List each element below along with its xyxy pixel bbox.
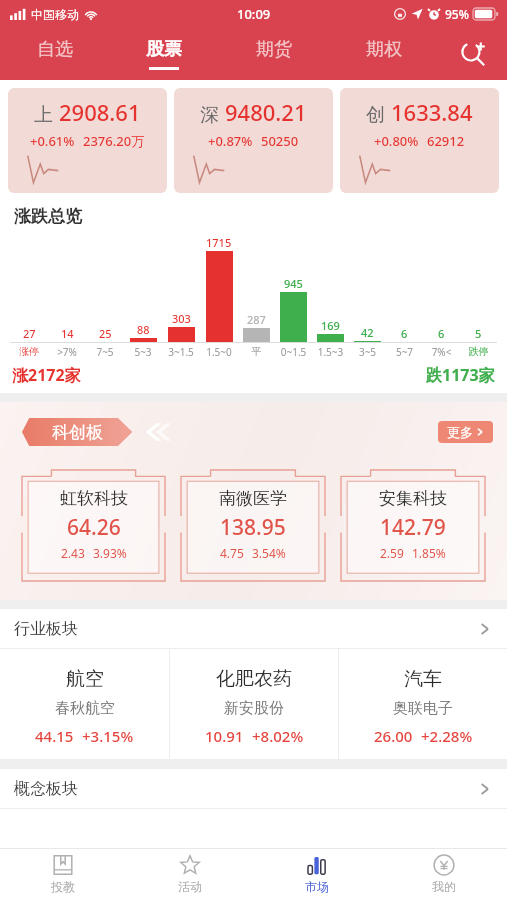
- staticText: 88: [137, 322, 150, 337]
- staticText: 市场: [305, 879, 329, 894]
- staticText: 14: [61, 326, 74, 341]
- staticText: 1633.84: [391, 97, 473, 127]
- staticText: 南微医学: [219, 488, 287, 509]
- staticText: 945: [284, 276, 303, 291]
- button[interactable]: 投教: [0, 848, 126, 900]
- staticText: 化肥农药: [216, 667, 292, 691]
- button[interactable]: Search and add: [439, 28, 507, 80]
- staticText: 3.54%: [252, 545, 286, 561]
- button[interactable]: 自选: [0, 28, 109, 80]
- staticText: +0.61%: [30, 132, 75, 150]
- button[interactable]: 航空: [0, 649, 169, 759]
- button[interactable]: 股票: [109, 28, 219, 80]
- staticText: 活动: [178, 879, 202, 894]
- staticText: 跌停: [460, 345, 497, 358]
- staticText: 投教: [51, 879, 75, 894]
- button[interactable]: 科创板: [22, 418, 142, 446]
- staticText: 2908.61: [59, 97, 141, 127]
- staticText: 27: [23, 326, 36, 341]
- staticText: 42: [361, 325, 374, 340]
- staticText: 25: [99, 326, 112, 341]
- staticText: 期货: [256, 38, 292, 61]
- staticText: 期权: [366, 38, 402, 61]
- button[interactable]: 虹软科技: [20, 468, 167, 583]
- staticText: 3~5: [349, 345, 386, 359]
- staticText: 142.79: [380, 513, 446, 542]
- staticText: 1.5~3: [312, 345, 349, 359]
- staticText: 1.5~0: [200, 345, 238, 359]
- staticText: 6: [438, 326, 445, 341]
- staticText: 航空: [66, 667, 104, 691]
- staticText: 138.95: [220, 513, 286, 542]
- staticText: 303: [172, 311, 191, 326]
- staticText: 62912: [427, 132, 465, 150]
- staticText: 涨停: [10, 345, 48, 358]
- staticText: 我的: [432, 879, 456, 894]
- staticText: 5: [475, 326, 482, 341]
- staticText: 跌1173家: [426, 364, 495, 386]
- staticText: +2.28%: [421, 726, 473, 746]
- button[interactable]: 上: [8, 88, 167, 193]
- staticText: 上: [34, 103, 53, 127]
- staticText: 概念板块: [14, 779, 78, 799]
- staticText: 虹软科技: [60, 488, 128, 509]
- staticText: 10:09: [237, 5, 271, 23]
- staticText: 平: [238, 345, 275, 358]
- staticText: 5~7: [386, 345, 423, 359]
- staticText: 0~1.5: [275, 345, 312, 359]
- button[interactable]: 更多: [438, 421, 493, 443]
- button[interactable]: 我的: [380, 848, 507, 900]
- staticText: 3.93%: [93, 545, 127, 561]
- staticText: 3~1.5: [162, 345, 200, 359]
- staticText: +0.80%: [374, 132, 419, 150]
- staticText: 7~5: [86, 345, 124, 359]
- button[interactable]: 化肥农药: [170, 649, 338, 759]
- staticText: 5~3: [124, 345, 162, 359]
- staticText: 10.91: [205, 726, 244, 746]
- staticText: +3.15%: [82, 726, 134, 746]
- button[interactable]: 安集科技: [339, 468, 487, 583]
- button[interactable]: 南微医学: [179, 468, 327, 583]
- button[interactable]: 市场: [253, 848, 380, 900]
- button[interactable]: 活动: [126, 848, 253, 900]
- staticText: 6: [401, 326, 408, 341]
- staticText: 涨2172家: [12, 364, 81, 386]
- staticText: 7%<: [423, 345, 460, 359]
- staticText: 奥联电子: [393, 699, 453, 718]
- staticText: 安集科技: [379, 488, 447, 509]
- staticText: 2.43: [61, 545, 85, 561]
- staticText: 169: [321, 318, 340, 333]
- staticText: 287: [247, 312, 266, 327]
- button[interactable]: 深: [174, 88, 333, 193]
- staticText: 50250: [261, 132, 299, 150]
- staticText: 64.26: [67, 513, 121, 542]
- staticText: 科创板: [52, 422, 103, 443]
- staticText: 汽车: [404, 667, 442, 691]
- staticText: 26.00: [374, 726, 413, 746]
- staticText: 9480.21: [225, 97, 307, 127]
- button[interactable]: 期权: [329, 28, 439, 80]
- button[interactable]: 行业板块: [0, 609, 507, 649]
- staticText: +8.02%: [252, 726, 304, 746]
- button[interactable]: 期货: [219, 28, 329, 80]
- staticText: 2376.20万: [83, 132, 145, 150]
- staticText: 股票: [146, 38, 182, 61]
- staticText: 新安股份: [224, 699, 284, 718]
- staticText: 创: [366, 103, 385, 127]
- staticText: 1715: [206, 235, 232, 250]
- staticText: 95%: [445, 6, 469, 22]
- staticText: >7%: [48, 345, 86, 359]
- staticText: 4.75: [220, 545, 244, 561]
- button[interactable]: 概念板块: [0, 769, 507, 809]
- staticText: 春秋航空: [55, 699, 115, 718]
- button[interactable]: 汽车: [339, 649, 507, 759]
- staticText: 中国移动: [31, 7, 79, 22]
- button[interactable]: 创: [340, 88, 499, 193]
- staticText: 自选: [37, 38, 73, 61]
- staticText: 行业板块: [14, 619, 78, 639]
- staticText: 1.85%: [412, 545, 446, 561]
- staticText: 更多: [447, 424, 473, 440]
- staticText: +0.87%: [208, 132, 253, 150]
- staticText: 涨跌总览: [14, 206, 82, 227]
- staticText: 深: [200, 103, 219, 127]
